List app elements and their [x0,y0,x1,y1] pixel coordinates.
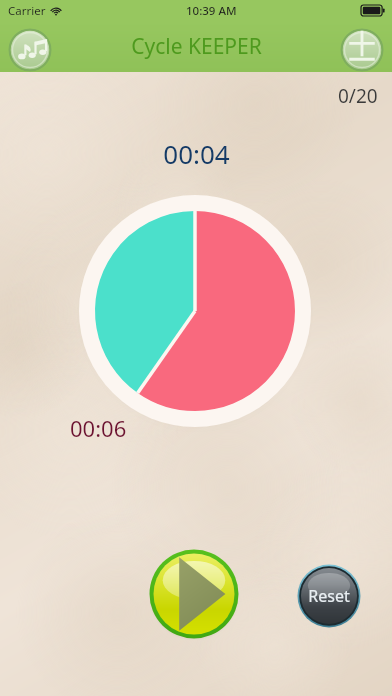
staticText: Cycle KEEPER [131,32,262,61]
staticText: 00:04 [163,136,230,171]
button[interactable]: Start [148,548,240,640]
staticText: Reset [308,585,350,607]
button[interactable]: Reset [296,563,362,629]
button[interactable]: Sound settings [8,28,52,72]
staticText: 00:06 [70,413,127,443]
staticText: Carrier [8,3,46,19]
staticText: 10:39 AM [186,3,237,19]
staticText: 0/20 [338,83,378,109]
button[interactable]: Adjust cycle count [340,28,384,72]
